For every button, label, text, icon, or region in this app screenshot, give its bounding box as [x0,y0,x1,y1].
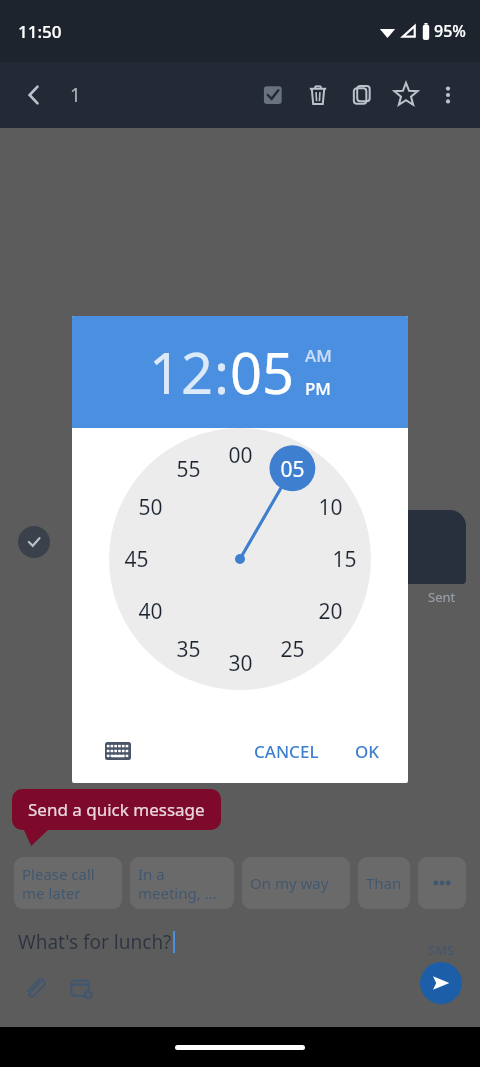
button[interactable]: CANCEL [244,732,329,771]
button[interactable]: More options [428,75,468,115]
button[interactable]: In a meeting, … [130,857,234,909]
button[interactable]: 15 [324,539,364,579]
staticText: 39 AM [330,551,369,569]
button[interactable]: 45 [116,539,156,579]
button[interactable]: 50 [130,487,170,527]
button[interactable]: Delete [296,73,340,117]
button[interactable]: 40 [130,591,170,631]
button[interactable]: Back [12,73,56,117]
button[interactable]: Send a quick message [12,789,221,830]
staticText: 50 [138,493,163,522]
button[interactable]: Please call me later [14,857,122,909]
staticText: CANCEL [254,740,319,763]
staticText: 55 [176,455,201,484]
staticText: On my way [250,873,329,893]
staticText: 30 [228,649,253,678]
button[interactable]: Than [358,857,410,909]
staticText: 11:50 [18,20,62,43]
staticText: In a meeting, … [138,864,217,903]
button[interactable]: 25 [272,629,312,669]
button[interactable]: Attach file [18,971,52,1005]
button[interactable]: What's for lunch? [18,929,172,955]
button[interactable]: 05 [272,449,312,489]
button[interactable]: Selected [18,526,50,558]
staticText: 25 [280,635,305,664]
staticText: Please call me later [22,864,95,903]
staticText: 05 [280,455,305,484]
staticText: 1 [70,82,81,108]
button[interactable]: 30 [220,643,260,683]
button[interactable]: On my way [242,857,350,909]
staticText: 35 [176,635,201,664]
button[interactable]: More suggestions [418,857,466,909]
staticText: 20 [318,597,343,626]
button[interactable]: AM [305,344,332,367]
button[interactable]: Star [384,73,428,117]
button[interactable]: OK [345,732,390,771]
button[interactable]: 55 [168,449,208,489]
button[interactable]: 00 [220,435,260,475]
staticText: 15 [332,545,357,574]
button[interactable]: Select [252,73,296,117]
button[interactable]: 05 [230,334,295,410]
staticText: 95% [434,20,466,42]
staticText: 10 [318,493,343,522]
button[interactable]: Archive [340,73,384,117]
staticText: Send a quick message [28,798,205,821]
button[interactable]: 10 [310,487,350,527]
staticText: 40 [138,597,163,626]
staticText: 00 [228,441,253,470]
staticText: lunch? [330,520,382,543]
staticText: 45 [124,545,149,574]
button[interactable]: Add card [64,971,98,1005]
button[interactable]: 12 [149,334,214,410]
button[interactable]: 20 [310,591,350,631]
staticText: : [214,334,230,410]
staticText: OK [355,740,380,763]
staticText: SMS [428,941,455,959]
staticText: Sent [428,588,456,606]
button[interactable]: Switch to keyboard input [100,733,136,769]
button[interactable]: lunch? [316,510,466,584]
button[interactable]: PM [305,377,331,400]
staticText: Than [366,873,402,893]
button[interactable]: 35 [168,629,208,669]
button[interactable]: Send [420,962,462,1004]
